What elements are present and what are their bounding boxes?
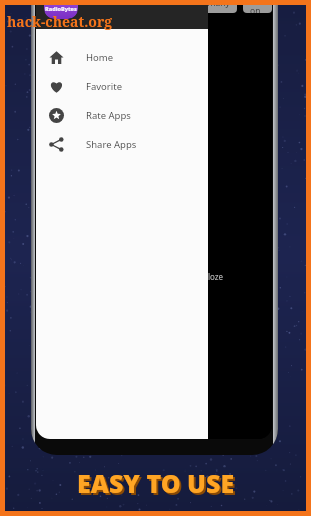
staticText: hack-cheat.org (7, 12, 113, 31)
button[interactable]: Indonesia (243, 0, 272, 13)
button[interactable]: Radiobytes app icon (44, 0, 78, 19)
staticText: Share Apps (86, 138, 137, 151)
staticText: EASY TO USE (77, 466, 235, 500)
staticText: jdloze (201, 271, 224, 282)
staticText: Rate Apps (86, 109, 131, 122)
staticText: EASY TO USE (79, 468, 237, 502)
button[interactable]: Share Apps (36, 130, 208, 159)
staticText: RadioBytes (45, 5, 77, 12)
staticText: Favorite (86, 80, 122, 93)
button[interactable]: Rate Apps (36, 101, 208, 130)
staticText: Germany (193, 0, 230, 9)
staticText: Indonesia (250, 0, 265, 13)
button[interactable]: Germany (186, 0, 237, 13)
staticText: Home (86, 51, 114, 64)
button[interactable]: Home (36, 43, 208, 72)
button[interactable]: Favorite (36, 72, 208, 101)
